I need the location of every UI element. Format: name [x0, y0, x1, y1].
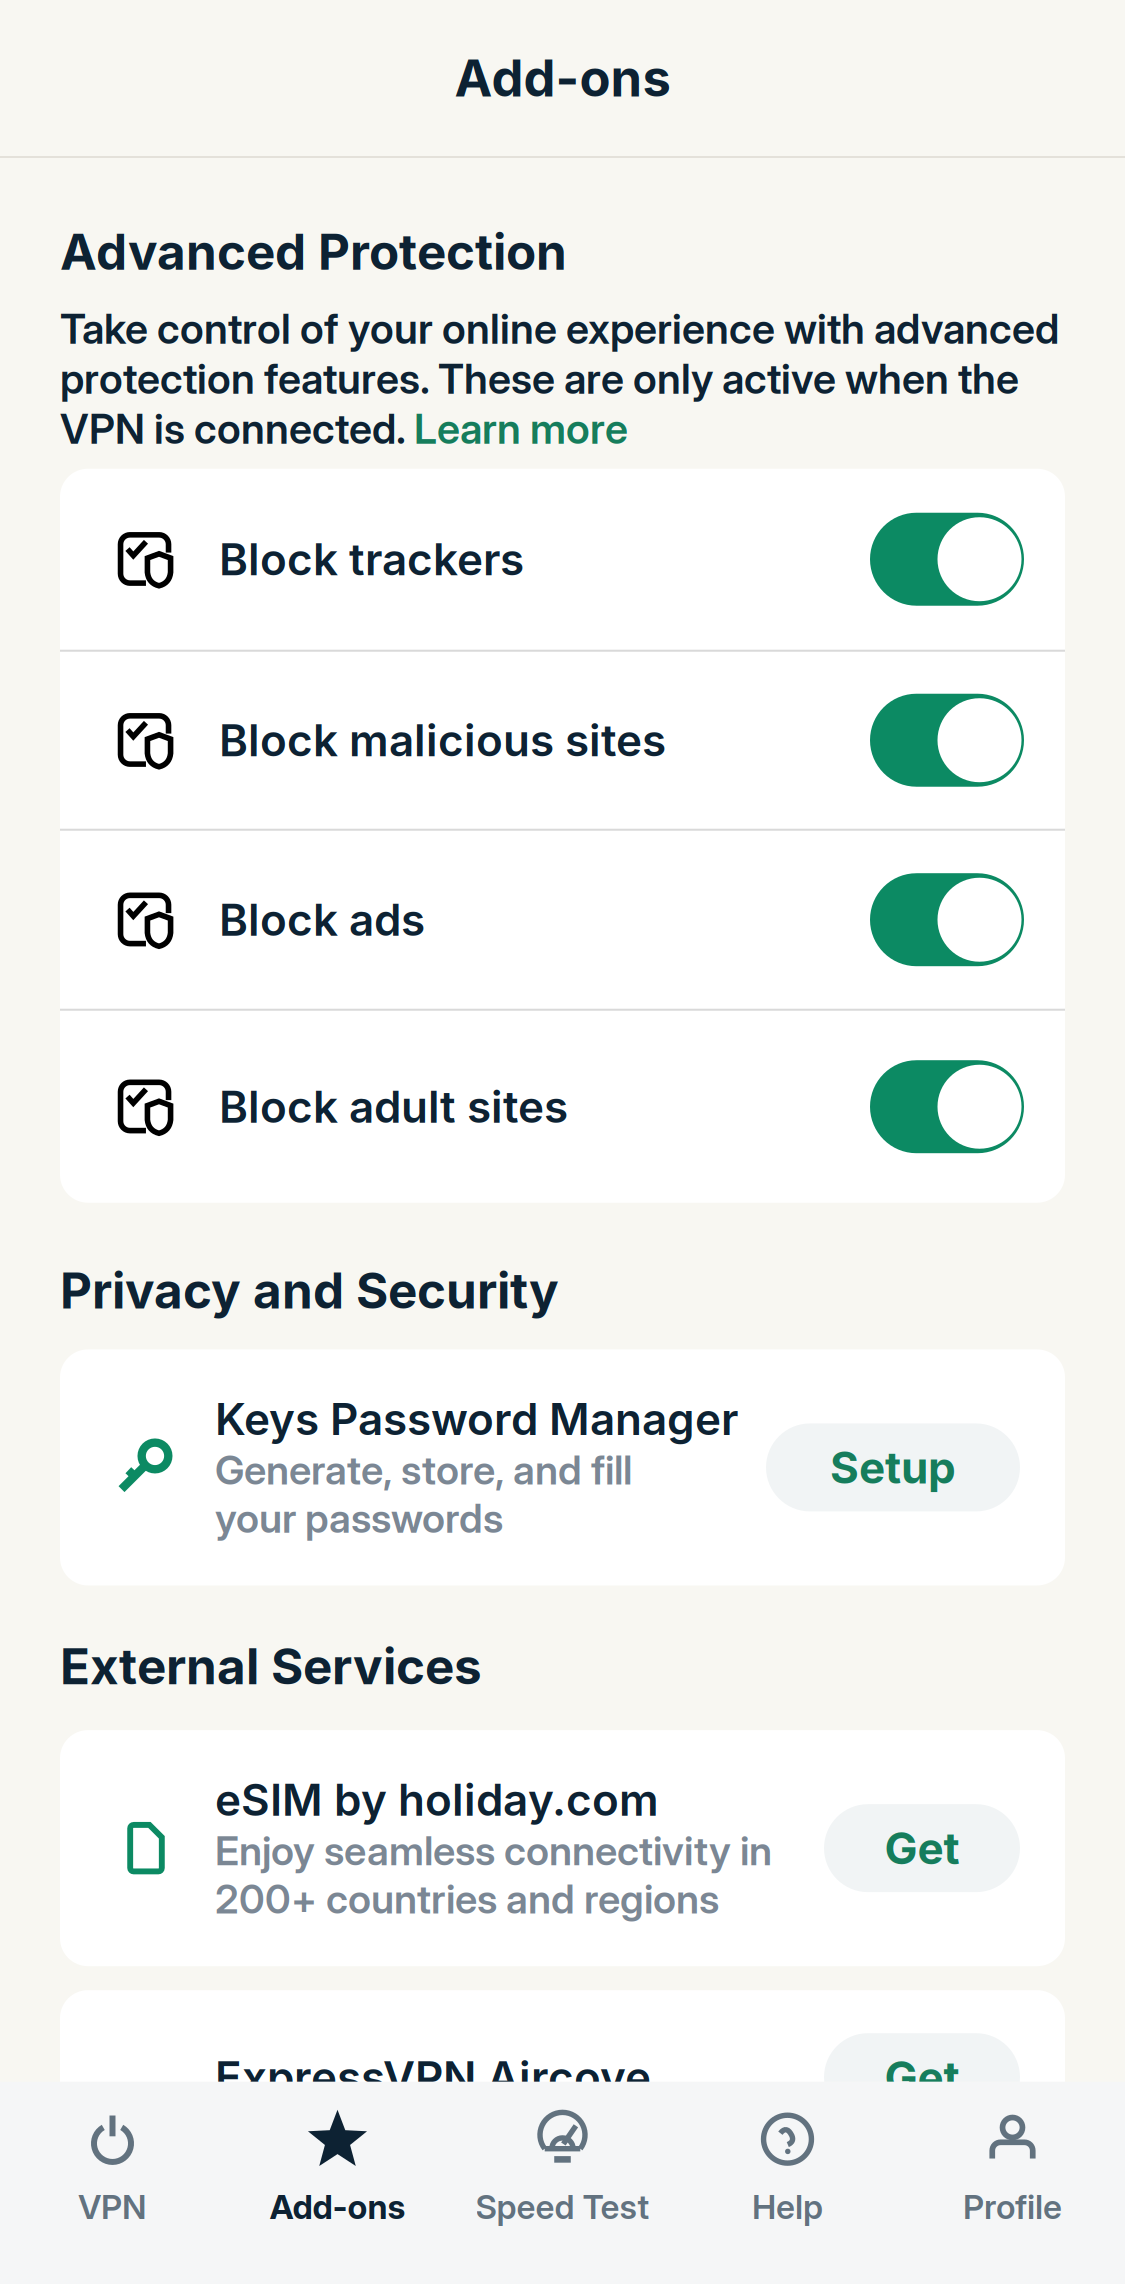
staticText: 200+ countries and regions	[215, 1875, 719, 1923]
staticText: Get	[884, 1821, 959, 1875]
staticText: VPN	[78, 2187, 147, 2227]
staticText: Learn more	[414, 404, 628, 454]
staticText: Take control of your online experience w…	[60, 304, 1059, 354]
button[interactable]: Block adult sites	[60, 1011, 1065, 1203]
staticText: Add-ons	[269, 2187, 405, 2227]
staticText: Block adult sites	[219, 1080, 568, 1133]
button[interactable]: VPN	[0, 2111, 225, 2227]
staticText: Speed Test	[475, 2187, 649, 2227]
button[interactable]: Add-ons	[225, 2111, 450, 2227]
staticText: eSIM by holiday.com	[215, 1773, 659, 1826]
staticText: your passwords	[215, 1494, 503, 1542]
button[interactable]: eSIM by holiday.com	[60, 1730, 1065, 1966]
staticText: Profile	[963, 2187, 1062, 2227]
staticText: ExpressVPN Aircove	[215, 2051, 651, 2104]
staticText: Block ads	[219, 893, 425, 946]
staticText: Block malicious sites	[219, 714, 666, 767]
staticText: Generate, store, and fill	[215, 1446, 632, 1494]
button[interactable]: Block malicious sites	[60, 652, 1065, 829]
staticText: Setup	[830, 1441, 956, 1494]
staticText: Enjoy seamless connectivity in	[215, 1826, 772, 1875]
staticText: Advanced Protection	[60, 222, 567, 282]
button[interactable]: Profile	[900, 2111, 1125, 2227]
staticText: Block trackers	[219, 533, 524, 586]
button[interactable]: Speed Test	[450, 2111, 675, 2227]
button[interactable]: ExpressVPN Aircove	[60, 1990, 1065, 2164]
staticText: Privacy and Security	[60, 1261, 559, 1320]
button[interactable]: Block ads	[60, 831, 1065, 1009]
staticText: Get	[884, 2051, 959, 2104]
button[interactable]: Learn more	[414, 404, 628, 454]
staticText: External Services	[60, 1636, 482, 1696]
button[interactable]: Keys Password Manager	[60, 1349, 1065, 1585]
staticText: VPN is connected.	[60, 404, 414, 454]
staticText: protection features. These are only acti…	[60, 354, 1019, 404]
staticText: Help	[752, 2187, 823, 2227]
button[interactable]: Block trackers	[60, 469, 1065, 650]
staticText: Add-ons	[454, 47, 670, 109]
button[interactable]: Help	[675, 2111, 900, 2227]
staticText: Keys Password Manager	[215, 1392, 738, 1446]
